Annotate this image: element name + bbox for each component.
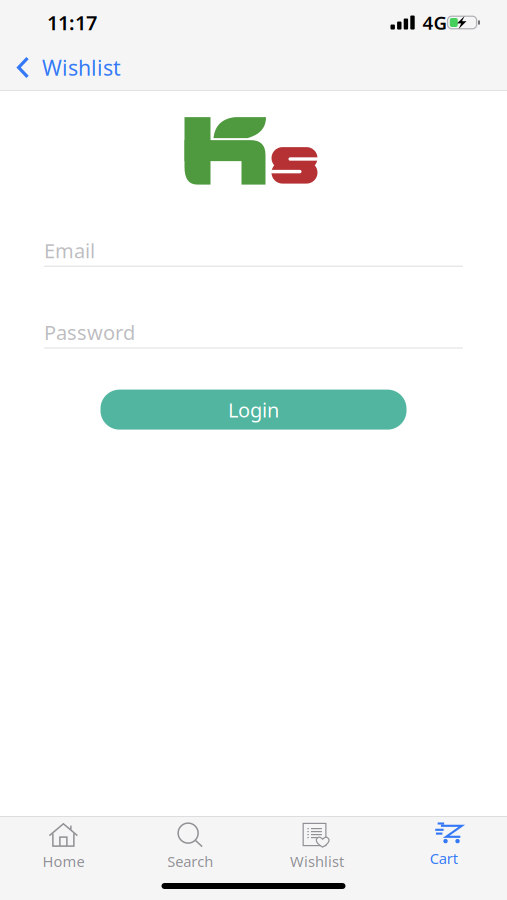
staticText: Wishlist [42,53,121,82]
button[interactable]: Wishlist [253,819,380,869]
staticText: Password [44,319,135,345]
staticText: Login [228,396,279,423]
button[interactable]: Login [100,390,406,430]
staticText: Wishlist [290,852,344,871]
staticText: 11:17 [47,9,97,36]
staticText: Email [44,237,95,264]
staticText: Search [167,852,213,871]
button[interactable]: Cart [380,819,507,869]
button[interactable]: Home [0,819,127,869]
staticText: 4G [423,10,448,35]
staticText: Cart [430,849,458,868]
staticText: Home [42,852,84,871]
button[interactable]: Wishlist [0,45,133,89]
button[interactable]: Search [127,819,254,869]
